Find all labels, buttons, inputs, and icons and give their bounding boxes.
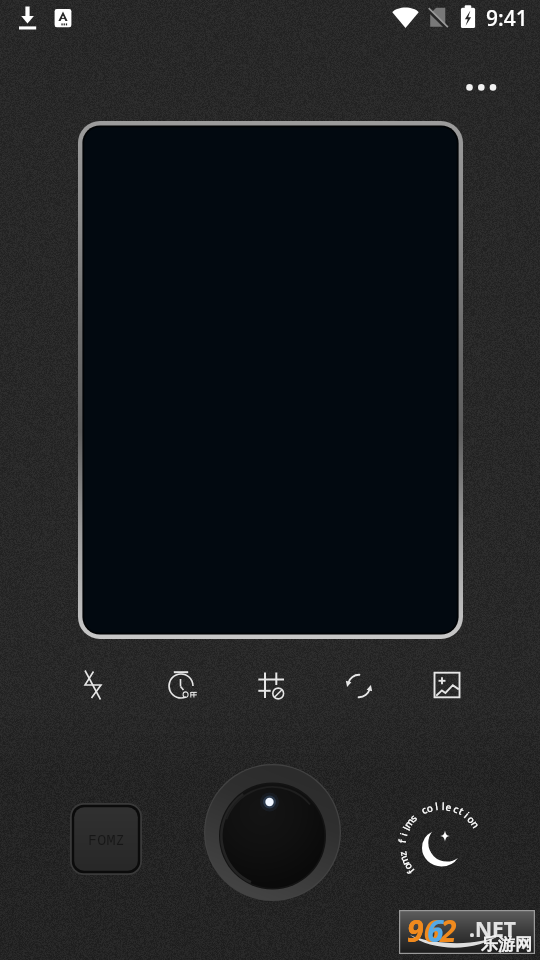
staticText: o: [424, 800, 435, 814]
staticText: c: [419, 802, 428, 815]
staticText: z: [395, 850, 408, 858]
staticText: m: [400, 814, 416, 830]
staticText: f: [404, 867, 416, 877]
button[interactable]: Grid off: [243, 658, 297, 712]
staticText: c: [452, 801, 461, 814]
staticText: n: [470, 818, 483, 830]
staticText: .NET: [469, 915, 516, 944]
staticText: [395, 846, 407, 850]
staticText: s: [406, 811, 419, 823]
button[interactable]: fomz films collection: [392, 794, 492, 894]
staticText: o: [466, 812, 479, 826]
staticText: [413, 807, 422, 819]
button[interactable]: Switch camera: [332, 659, 386, 713]
staticText: FOMZ: [88, 829, 125, 849]
button[interactable]: Timer off: [154, 659, 208, 713]
staticText: o: [400, 861, 413, 873]
button[interactable]: Flash off: [66, 658, 120, 712]
staticText: m: [396, 854, 410, 868]
staticText: e: [445, 799, 453, 812]
button[interactable]: Camera preview: [78, 121, 463, 639]
staticText: i: [462, 808, 472, 820]
button[interactable]: Film FOMZ: [70, 803, 142, 875]
staticText: 9: [407, 910, 424, 951]
staticText: 962: [407, 910, 457, 951]
staticText: l: [434, 799, 439, 811]
button[interactable]: Gallery: [420, 658, 474, 712]
staticText: 乐游网: [481, 934, 532, 955]
staticText: l: [442, 799, 445, 811]
staticText: f: [395, 838, 407, 844]
button[interactable]: Shutter: [204, 764, 341, 901]
staticText: i: [396, 831, 409, 837]
staticText: t: [457, 804, 467, 816]
staticText: 6: [427, 910, 444, 951]
button[interactable]: More options: [457, 65, 505, 110]
staticText: 9:41: [486, 4, 528, 33]
staticText: l: [399, 824, 411, 832]
